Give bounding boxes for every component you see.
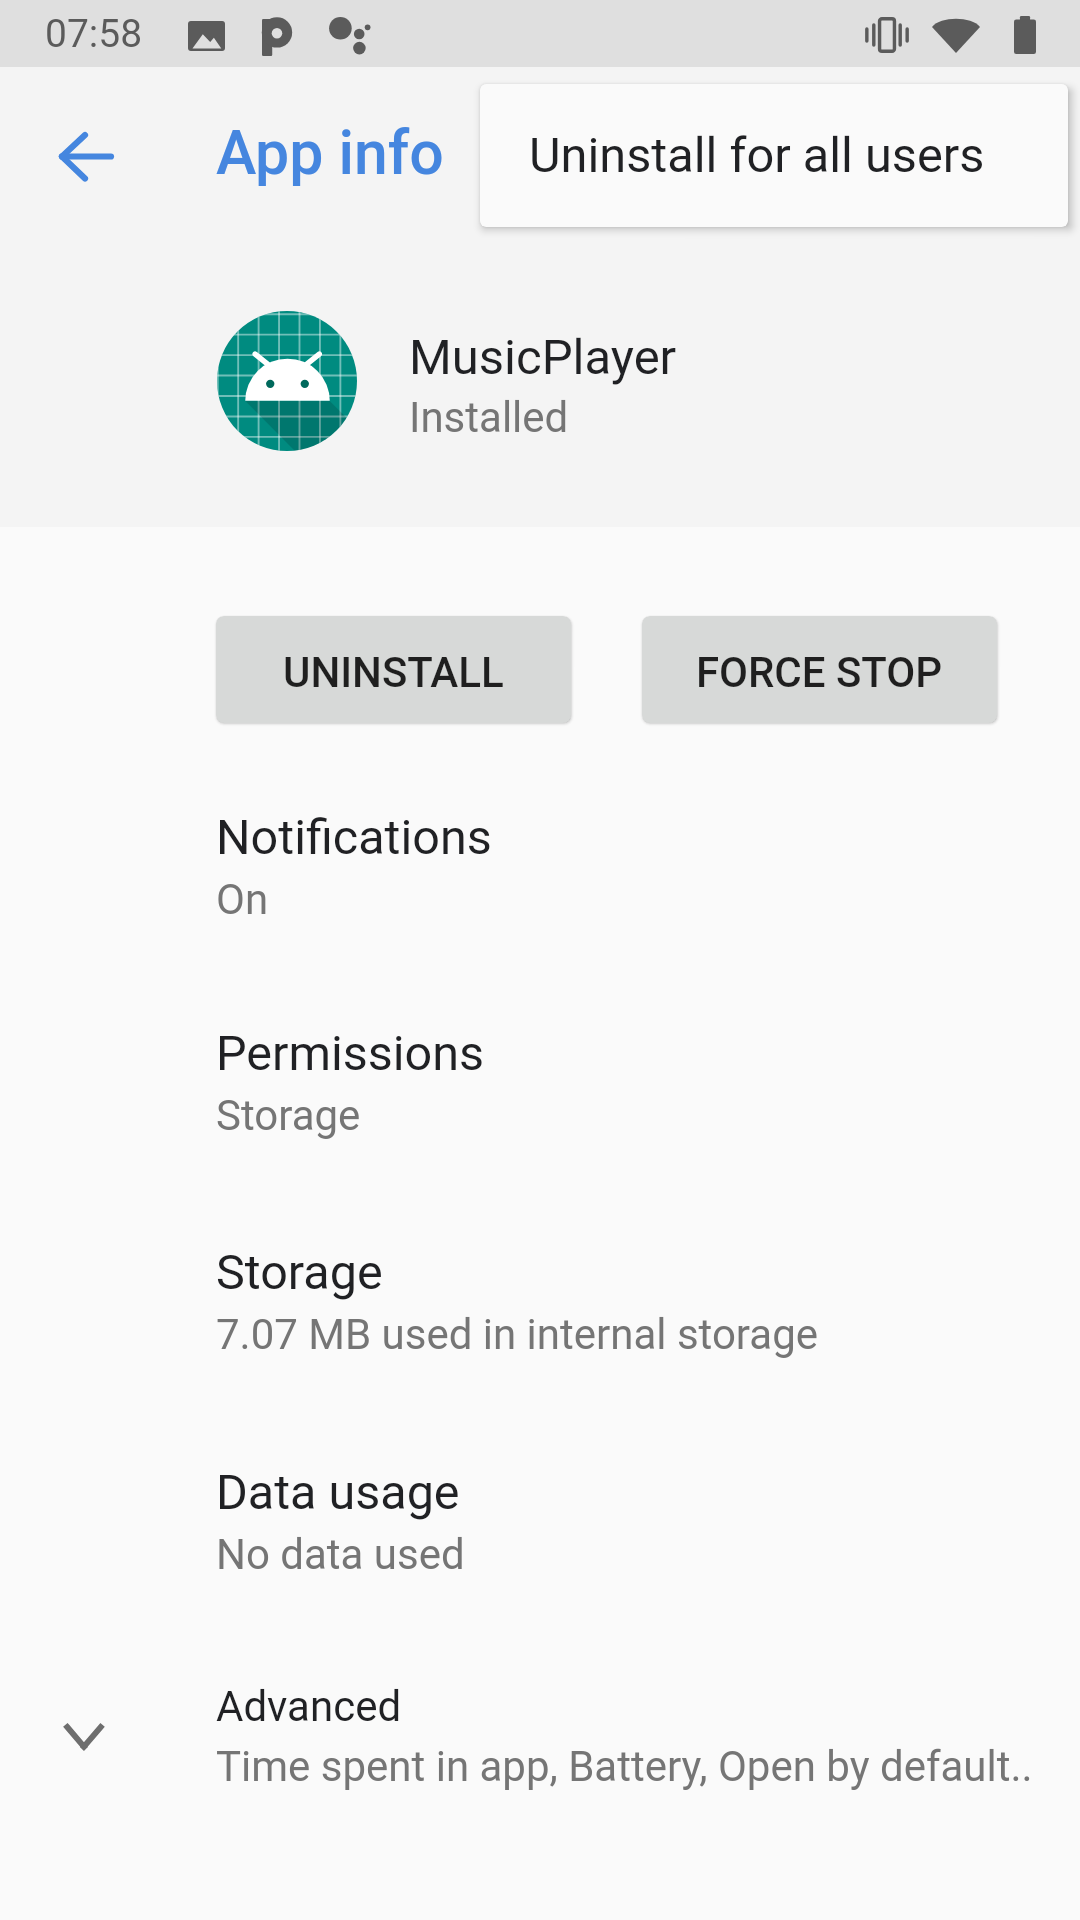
staticText: Installed (409, 393, 569, 442)
button[interactable]: Data usage (0, 1450, 1080, 1665)
staticText: 07:58 (45, 11, 143, 57)
staticText: Storage (216, 1244, 383, 1301)
staticText: No data used (216, 1530, 465, 1579)
staticText: MusicPlayer (409, 329, 677, 386)
staticText: Permissions (216, 1025, 485, 1082)
button[interactable]: Uninstall for all users (480, 84, 1068, 227)
staticText: Notifications (216, 809, 492, 866)
button[interactable]: Navigate up (51, 122, 119, 190)
staticText: App info (216, 118, 444, 189)
button[interactable]: FORCE STOP (642, 616, 997, 723)
button[interactable]: UNINSTALL (216, 616, 571, 723)
staticText: Advanced (216, 1682, 402, 1731)
button[interactable]: Expand advanced settings (50, 1700, 118, 1768)
staticText: On (216, 875, 269, 924)
staticText: UNINSTALL (283, 648, 504, 697)
staticText: 7.07 MB used in internal storage (216, 1310, 818, 1359)
button[interactable]: Notifications (0, 795, 1080, 1010)
staticText: Time spent in app, Battery, Open by defa… (216, 1742, 1033, 1791)
button[interactable]: Permissions (0, 1011, 1080, 1226)
staticText: Data usage (216, 1464, 460, 1521)
staticText: Storage (216, 1091, 361, 1140)
staticText: FORCE STOP (696, 648, 943, 697)
staticText: Uninstall for all users (529, 127, 985, 184)
button[interactable]: Expand advanced settings (0, 1658, 1080, 1873)
button[interactable]: Storage (0, 1230, 1080, 1445)
